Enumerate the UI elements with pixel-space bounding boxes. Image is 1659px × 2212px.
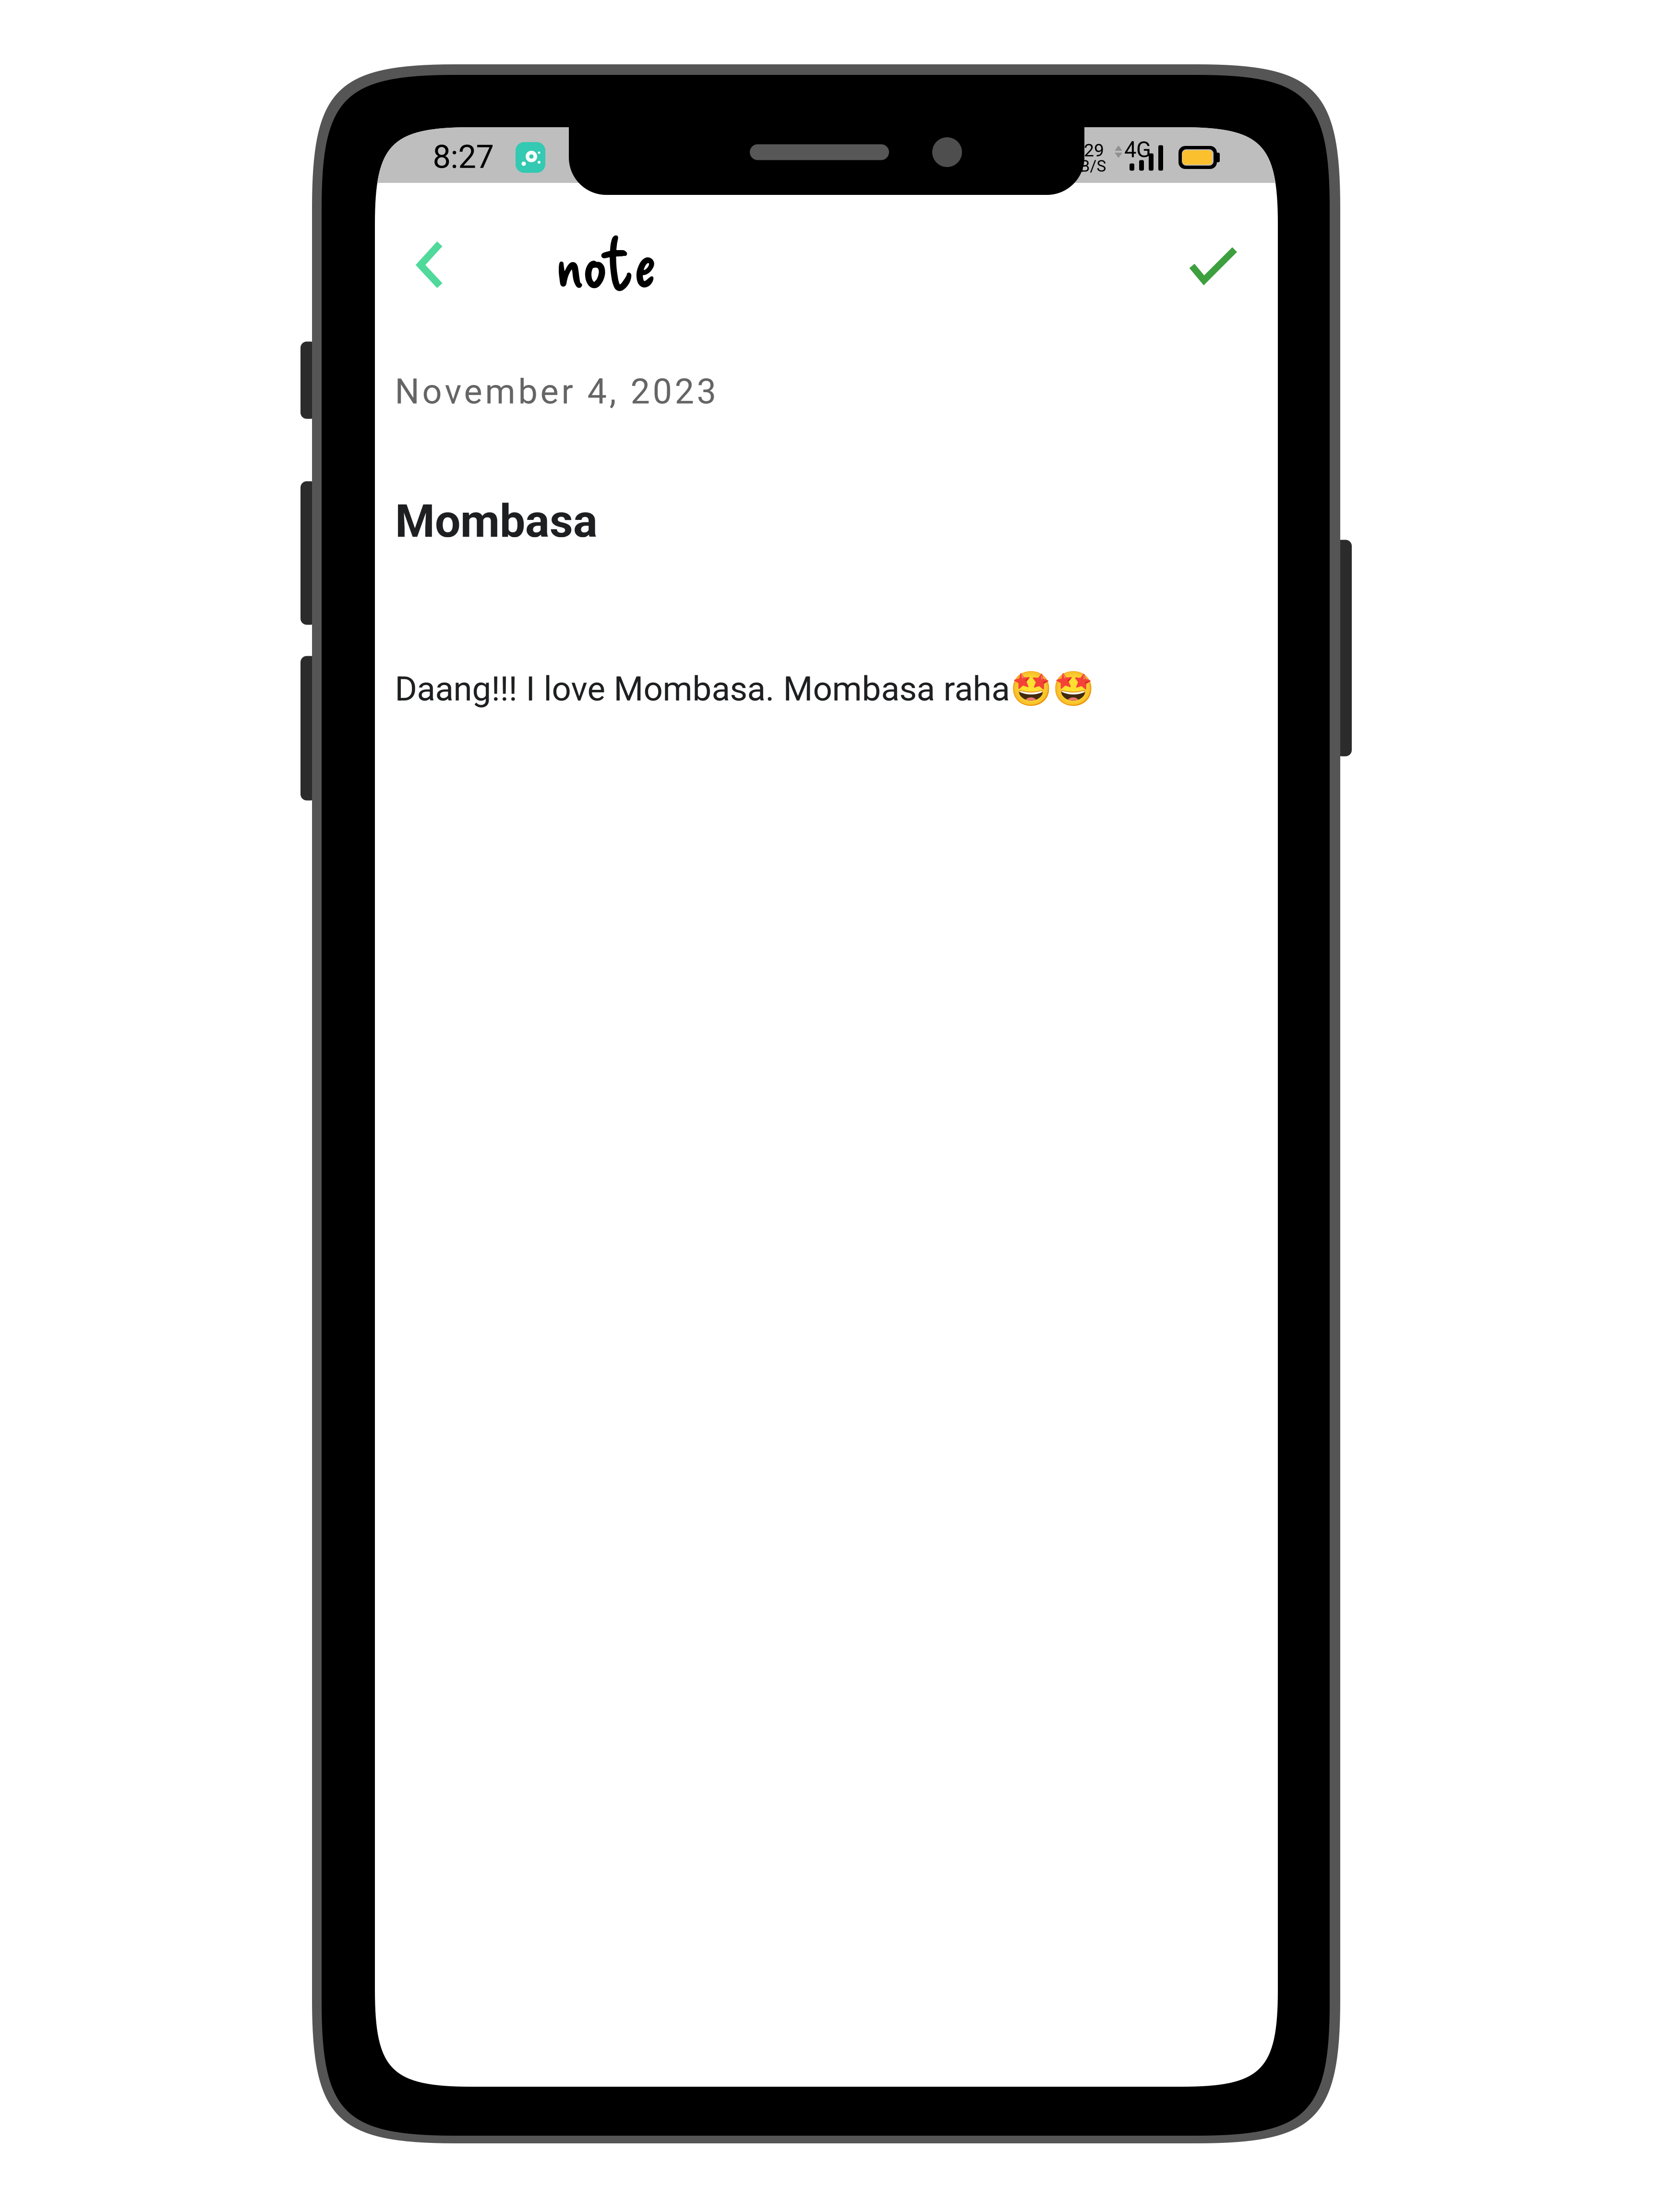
staticText: B/S: [1080, 157, 1106, 176]
staticText: note: [556, 220, 656, 301]
button[interactable]: Back: [411, 217, 503, 313]
staticText: Mombasa: [395, 495, 598, 548]
staticText: 29: [1084, 140, 1104, 161]
staticText: November 4, 2023: [395, 371, 716, 412]
staticText: 8:27: [433, 138, 494, 176]
staticText: Daang!!! I love Mombasa. Mombasa raha🤩🤩: [395, 669, 1094, 709]
button[interactable]: Done: [1157, 224, 1273, 320]
staticText: 4G: [1124, 137, 1151, 162]
